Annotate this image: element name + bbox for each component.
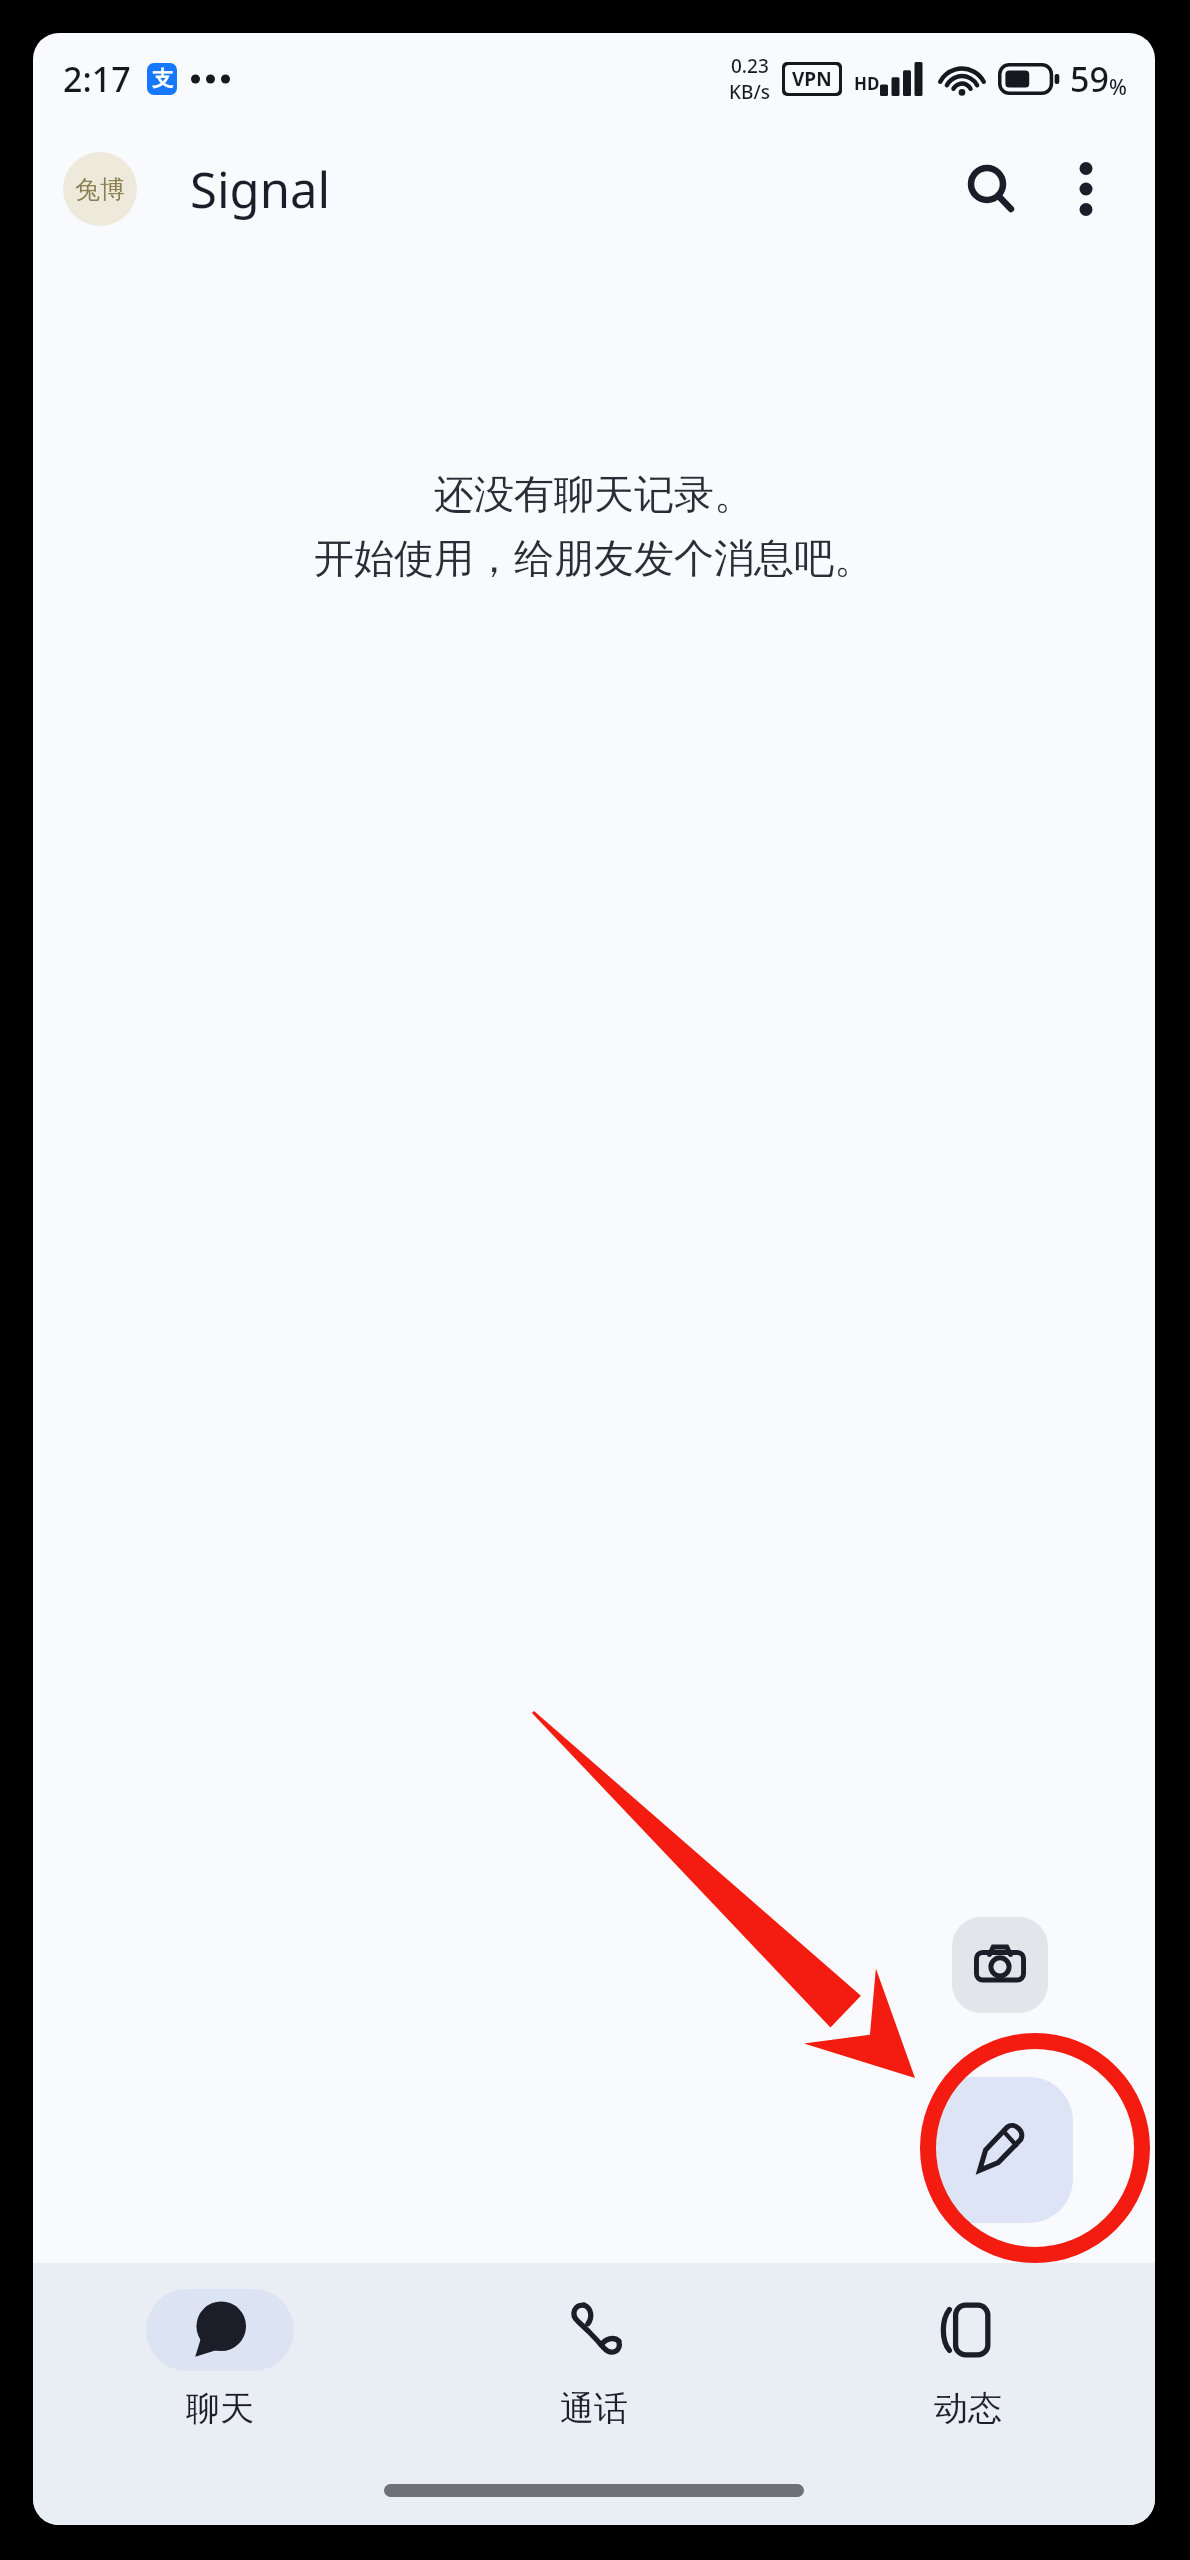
staticText: 通话 [560, 2387, 628, 2430]
staticText: 0.23 [731, 53, 769, 79]
staticText: HD [854, 72, 880, 95]
button[interactable]: 动态 [781, 2285, 1155, 2434]
staticText: KB/s [729, 79, 770, 105]
staticText: 2:17 [63, 56, 131, 102]
staticText: VPN [792, 66, 832, 92]
button[interactable]: More options [1047, 150, 1125, 228]
button[interactable]: Search [947, 145, 1035, 233]
staticText: Signal [190, 156, 331, 223]
button[interactable]: New message [927, 2077, 1073, 2223]
button[interactable]: 聊天 [33, 2285, 407, 2434]
staticText: 还没有聊天记录。 [434, 469, 754, 519]
staticText: 开始使用，给朋友发个消息吧。 [314, 533, 874, 583]
staticText: 59 [1070, 56, 1109, 102]
button[interactable]: 通话 [407, 2285, 781, 2434]
staticText: % [1109, 73, 1127, 102]
staticText: 聊天 [186, 2387, 254, 2430]
button[interactable]: Camera [952, 1917, 1048, 2013]
staticText: 兔博 [75, 174, 125, 205]
staticText: 动态 [934, 2387, 1002, 2430]
button[interactable]: Profile [63, 152, 137, 226]
staticText: 支 [152, 66, 173, 92]
